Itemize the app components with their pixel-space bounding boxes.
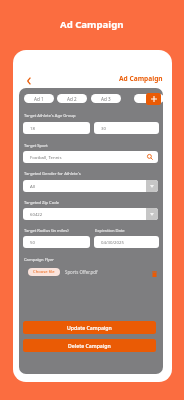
staticText: Delete Campaign [68, 342, 111, 349]
button[interactable]: Ad 1 [24, 94, 54, 103]
staticText: All [30, 183, 35, 189]
button[interactable]: Ad 2 [57, 94, 87, 103]
button[interactable]: Choose file [28, 268, 60, 276]
button[interactable]: Ad 3 [91, 94, 121, 103]
button[interactable]: Delete Campaign [23, 339, 156, 352]
button[interactable]: Ad 4 [134, 94, 164, 103]
staticText: Target Radius (in miles) [24, 228, 69, 234]
staticText: Choose file [33, 269, 55, 275]
staticText: Targeted Zip Code [24, 200, 59, 206]
button[interactable]: 30 [94, 122, 159, 134]
button[interactable]: 60422 [23, 208, 158, 220]
button[interactable]: Back [22, 74, 35, 87]
staticText: Ad 1 [34, 96, 44, 102]
staticText: Ad 2 [67, 96, 77, 102]
button[interactable]: Remove file [150, 269, 159, 278]
staticText: 18 [30, 125, 35, 131]
staticText: Ad Campaign [60, 18, 124, 31]
staticText: Ad 3 [101, 96, 111, 102]
staticText: Targeted Gender for Athlete's [24, 171, 81, 177]
button[interactable]: Football, Tennis [23, 151, 158, 163]
staticText: 60422 [30, 211, 43, 217]
button[interactable]: Add campaign [146, 93, 161, 105]
button[interactable]: 18 [23, 122, 90, 134]
staticText: Update Campaign [67, 324, 112, 331]
button[interactable]: 50 [23, 236, 90, 248]
staticText: Ad Campaign [119, 74, 163, 83]
staticText: 50 [30, 239, 35, 245]
staticText: 30 [101, 125, 106, 131]
button[interactable]: All [23, 180, 158, 192]
staticText: Campaign Flyer [24, 257, 54, 263]
button[interactable]: 04/30/2025 [94, 236, 159, 248]
staticText: Target Athlete's Age Group [24, 113, 76, 119]
staticText: 04/30/2025 [101, 239, 124, 245]
button[interactable]: Update Campaign [23, 321, 156, 334]
staticText: Expiration Date [95, 228, 125, 234]
staticText: Target Sport [24, 143, 48, 149]
staticText: Football, Tennis [30, 154, 62, 160]
staticText: Sports Offer.pdf [65, 269, 98, 275]
